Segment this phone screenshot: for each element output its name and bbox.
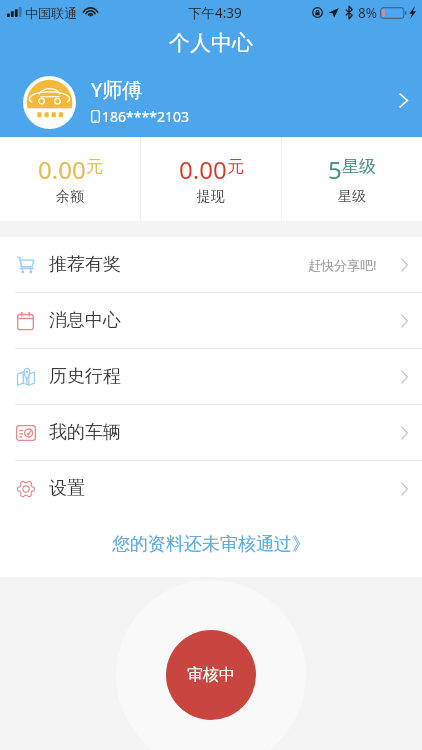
staticText: 0.00 <box>179 153 227 186</box>
staticText: 个人中心 <box>169 30 253 56</box>
staticText: 历史行程 <box>49 365 121 388</box>
staticText: 元 <box>86 156 103 177</box>
staticText: 5 <box>328 153 342 186</box>
staticText: 赶快分享吧! <box>308 256 377 274</box>
staticText: 审核中 <box>187 665 235 685</box>
staticText: 推荐有奖 <box>49 253 121 276</box>
staticText: 提现 <box>197 188 225 206</box>
button[interactable]: 5 <box>282 137 422 221</box>
staticText: 余额 <box>56 188 84 206</box>
staticText: 8% <box>358 4 377 22</box>
staticText: 我的车辆 <box>49 421 121 444</box>
button[interactable]: 我的车辆 <box>0 405 422 460</box>
staticText: 0.00 <box>38 153 86 186</box>
staticText: 消息中心 <box>49 309 121 332</box>
staticText: 星级 <box>338 188 366 206</box>
button[interactable]: 设置 <box>0 461 422 516</box>
staticText: 下午4:39 <box>188 4 242 22</box>
staticText: 元 <box>227 156 244 177</box>
staticText: 您的资料还未审核通过》 <box>112 533 310 556</box>
staticText: Y师傅 <box>91 76 143 103</box>
button[interactable]: 您的资料还未审核通过》 <box>0 516 422 577</box>
button[interactable]: 审核中 <box>166 630 256 720</box>
staticText: 星级 <box>342 156 376 177</box>
button[interactable]: Y师傅 <box>0 64 422 137</box>
staticText: 中国联通 <box>25 5 77 21</box>
staticText: 设置 <box>49 477 85 500</box>
button[interactable]: 历史行程 <box>0 349 422 404</box>
button[interactable]: 0.00 <box>141 137 281 221</box>
button[interactable]: 推荐有奖 <box>0 237 422 292</box>
button[interactable]: 0.00 <box>0 137 140 221</box>
button[interactable]: 消息中心 <box>0 293 422 348</box>
staticText: 186****2103 <box>102 107 189 126</box>
other: Profile details <box>399 93 408 108</box>
